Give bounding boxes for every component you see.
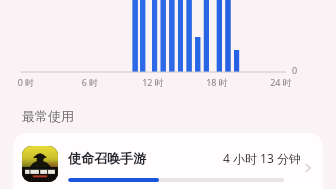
- staticText: 0: [292, 64, 298, 76]
- button[interactable]: 查看详情: [299, 159, 317, 177]
- staticText: 24 时: [267, 76, 295, 88]
- staticText: 4 小时 13 分钟: [223, 150, 301, 166]
- button[interactable]: 使命召唤手游: [13, 133, 323, 189]
- staticText: 12 时: [139, 76, 167, 88]
- staticText: 18 时: [203, 76, 231, 88]
- staticText: 0 时: [12, 76, 40, 88]
- staticText: 最常使用: [22, 108, 74, 124]
- staticText: 6 时: [76, 76, 104, 88]
- staticText: 使命召唤手游: [68, 150, 146, 166]
